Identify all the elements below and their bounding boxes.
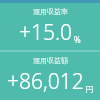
staticText: 運用収益額 xyxy=(33,56,68,65)
button[interactable]: 運用収益率 xyxy=(0,3,100,50)
staticText: % xyxy=(74,34,81,45)
staticText: 円 xyxy=(85,84,93,94)
staticText: +86,012 xyxy=(7,67,84,96)
button[interactable]: 運用収益額 xyxy=(0,52,100,100)
staticText: 運用収益率 xyxy=(33,7,68,16)
staticText: +15.0 xyxy=(19,18,73,47)
